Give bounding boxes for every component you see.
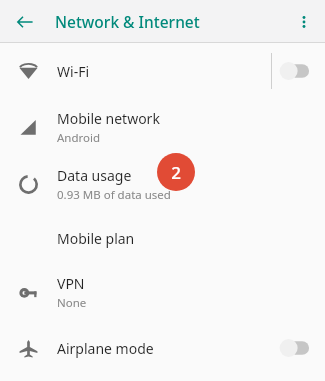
button[interactable]: Mobile plan (0, 212, 325, 264)
button[interactable]: Data usage (0, 156, 325, 212)
button[interactable]: More options (288, 6, 320, 38)
staticText: Wi-Fi (57, 62, 90, 81)
button[interactable]: VPN (0, 264, 325, 320)
staticText: Mobile network (57, 109, 160, 128)
staticText: Data usage (57, 166, 132, 185)
staticText: Mobile plan (57, 229, 135, 248)
staticText: Network & Internet (55, 11, 200, 32)
button[interactable]: Toggle (272, 328, 318, 368)
button[interactable]: Airplane mode (0, 320, 325, 376)
staticText: 0.93 MB of data used (57, 187, 171, 203)
staticText: None (57, 295, 87, 311)
staticText: 2 (171, 161, 181, 184)
button[interactable]: Mobile network (0, 99, 325, 156)
staticText: Android (57, 130, 101, 146)
staticText: VPN (57, 274, 85, 293)
button[interactable]: Back (8, 5, 42, 39)
button[interactable]: Toggle (272, 51, 318, 91)
button[interactable]: Wi-Fi (0, 43, 325, 99)
staticText: Airplane mode (57, 339, 154, 358)
